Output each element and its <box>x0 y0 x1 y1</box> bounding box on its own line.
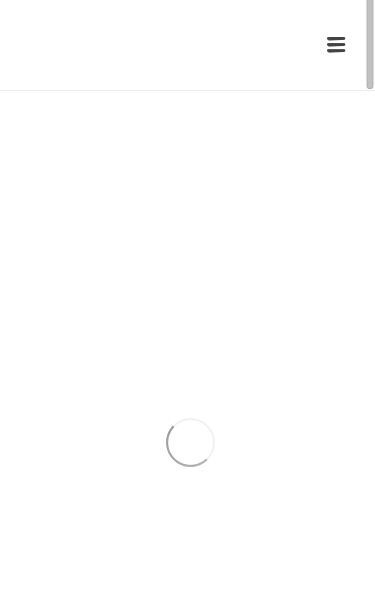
button[interactable]: Menu <box>312 22 375 68</box>
